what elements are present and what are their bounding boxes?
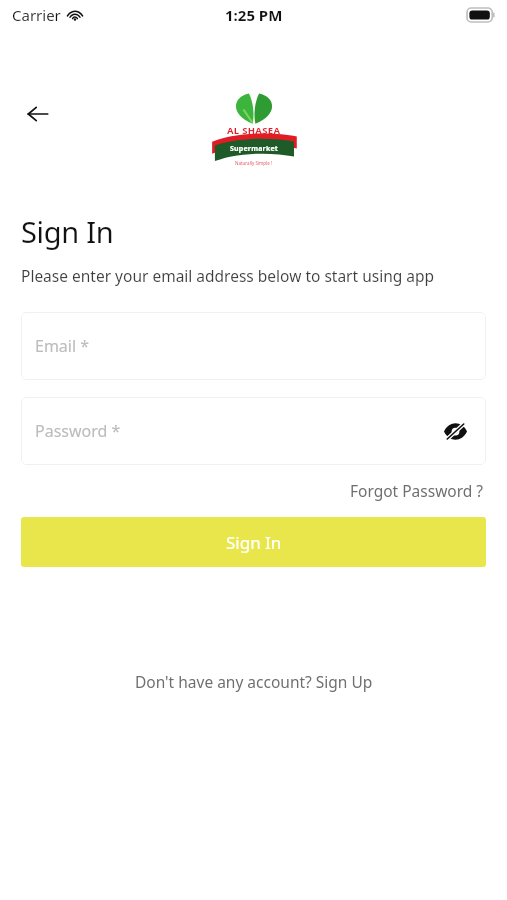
button[interactable]: Back [14, 90, 62, 138]
button[interactable]: Show password [438, 414, 472, 448]
staticText: Naturally Simple ! [235, 160, 273, 166]
staticText: AL SHASEA [227, 124, 281, 137]
button[interactable]: Forgot Password ? [348, 477, 486, 504]
staticText: Password * [35, 420, 121, 442]
staticText: Carrier [12, 5, 61, 25]
button[interactable]: Sign In [21, 517, 486, 567]
staticText: Forgot Password ? [350, 480, 484, 501]
staticText: Sign In [21, 212, 114, 251]
staticText: Supermarket [230, 144, 279, 154]
button[interactable]: Email * [21, 312, 486, 380]
button[interactable]: Don't have any account? Sign Up [127, 665, 381, 698]
button[interactable]: Password * [21, 397, 486, 465]
staticText: 1:25 PM [225, 5, 283, 25]
staticText: Email * [35, 335, 90, 357]
staticText: Please enter your email address below to… [21, 265, 435, 286]
staticText: Don't have any account? Sign Up [135, 671, 373, 692]
staticText: Sign In [226, 531, 282, 554]
